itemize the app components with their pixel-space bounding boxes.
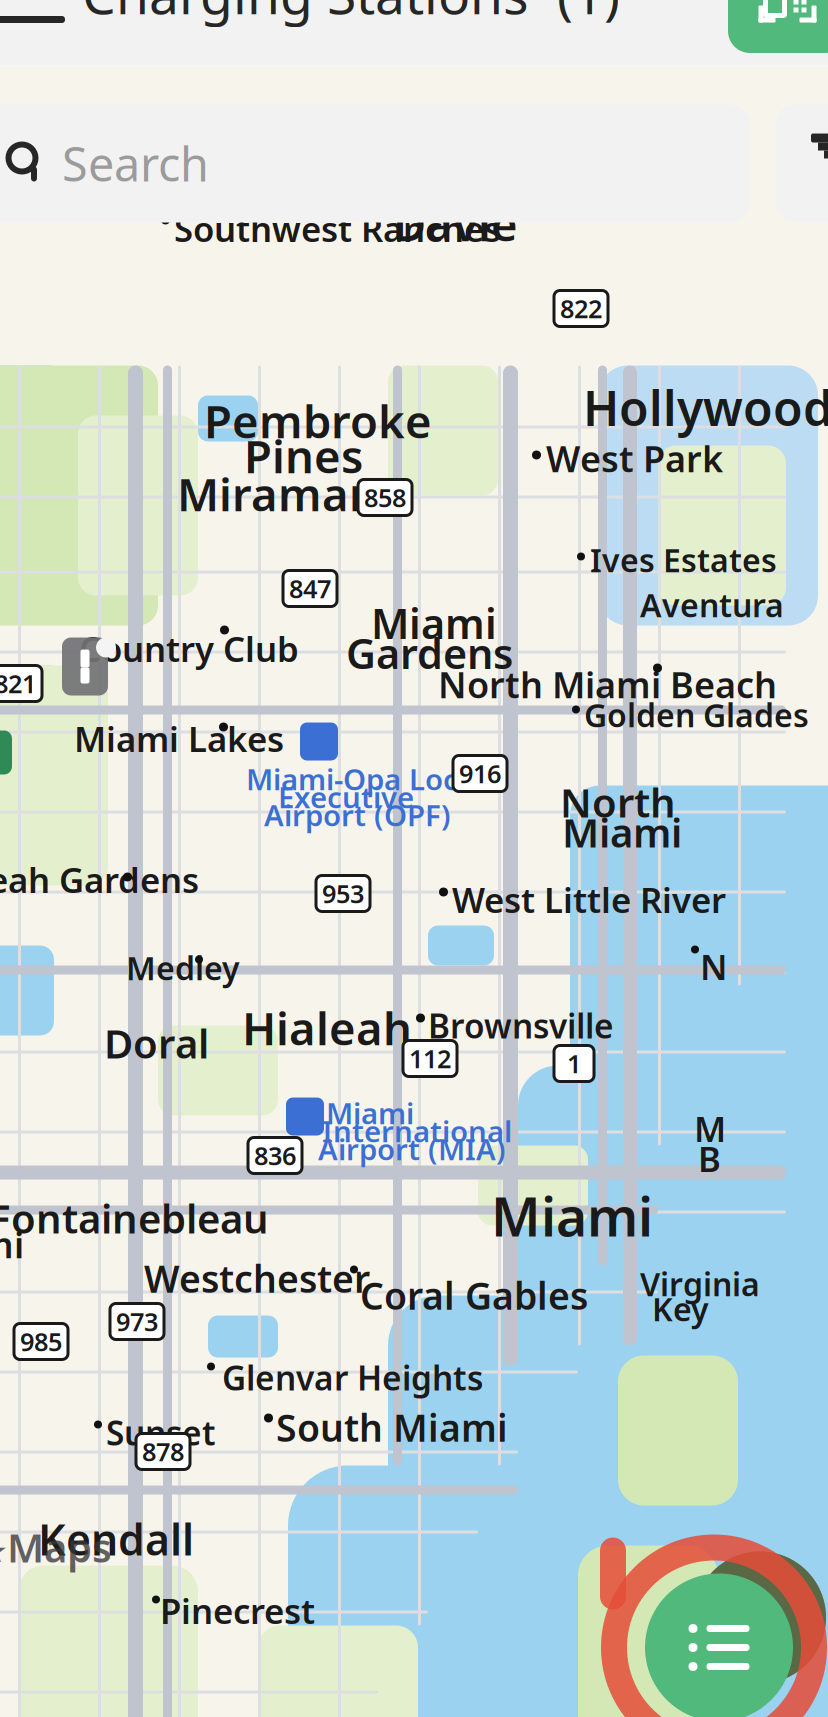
staticText: aleah Gardens xyxy=(0,856,199,902)
staticText: 953 xyxy=(322,877,364,910)
staticText: Miami xyxy=(371,595,497,650)
staticText: Miramar xyxy=(177,463,369,524)
button[interactable]: Menu xyxy=(0,0,82,44)
staticText: Southwest Ranches xyxy=(174,205,501,251)
staticText: Virginia xyxy=(640,1262,760,1305)
staticText: West Park xyxy=(546,434,723,482)
staticText: 916 xyxy=(459,757,501,790)
staticText: Miami Lakes xyxy=(74,715,284,761)
staticText: 973 xyxy=(116,1305,158,1338)
staticText: 878 xyxy=(142,1435,184,1468)
button[interactable]: Switch map type xyxy=(694,1551,826,1683)
staticText: 836 xyxy=(254,1139,296,1172)
staticText: 112 xyxy=(409,1042,451,1075)
staticText: 847 xyxy=(289,572,331,605)
staticText: Fontainebleau xyxy=(0,1191,269,1245)
staticText: 822 xyxy=(560,292,602,325)
staticText: International xyxy=(322,1111,512,1150)
staticText: Country Club xyxy=(79,625,299,671)
staticText: North Miami Beach xyxy=(438,660,777,708)
staticText: Coral Gables xyxy=(360,1270,588,1320)
staticText: Sunset xyxy=(106,1410,216,1455)
staticText: Miami xyxy=(491,1180,653,1251)
staticText: B xyxy=(698,1135,721,1181)
staticText: Miami xyxy=(326,1093,414,1132)
staticText: Hialeah xyxy=(242,997,412,1058)
button[interactable]: Show list of charging stations xyxy=(645,1573,793,1717)
staticText: North xyxy=(560,775,676,829)
staticText: Miami xyxy=(562,805,682,859)
staticText: Kendall xyxy=(38,1510,194,1567)
staticText: Doral xyxy=(104,1016,209,1070)
staticText: Hollywood xyxy=(583,375,828,439)
staticText: West Little River xyxy=(452,876,726,922)
staticText: Pembroke xyxy=(204,390,432,451)
staticText: Executive xyxy=(278,777,414,816)
button[interactable]: Filter xyxy=(776,104,828,222)
staticText: Charging Stations (1) xyxy=(82,0,620,29)
button[interactable]: Search xyxy=(0,104,750,222)
staticText: Pinecrest xyxy=(160,1587,315,1633)
staticText: N xyxy=(700,943,727,989)
staticText: Aventura xyxy=(640,583,784,626)
staticText: 858 xyxy=(364,481,406,514)
staticText: Key xyxy=(652,1287,709,1330)
button[interactable]: Scan QR code xyxy=(728,0,828,53)
staticText: Airport (OPF) xyxy=(264,795,451,834)
staticText: Glenvar Heights xyxy=(222,1355,483,1400)
staticText: Search xyxy=(62,132,209,194)
staticText: Westchester xyxy=(144,1253,370,1303)
staticText: Golden Glades xyxy=(584,693,809,736)
staticText: ami xyxy=(0,1220,24,1268)
staticText: Pines xyxy=(244,425,363,486)
staticText: 1 xyxy=(567,1047,581,1080)
staticText: South Miami xyxy=(276,1402,508,1452)
staticText: 985 xyxy=(20,1325,62,1358)
staticText: Airport (MIA) xyxy=(318,1129,506,1168)
staticText: Ives Estates xyxy=(590,538,777,581)
staticText: 821 xyxy=(0,667,36,700)
staticText: Miami-Opa Locka xyxy=(246,759,492,798)
staticText: Gardens xyxy=(346,625,513,680)
staticText: Medley xyxy=(126,946,240,989)
staticText: Maps xyxy=(0,1520,112,1573)
staticText: Brownsville xyxy=(428,1003,614,1048)
staticText: M xyxy=(694,1105,726,1151)
staticText: Davie xyxy=(393,193,518,254)
